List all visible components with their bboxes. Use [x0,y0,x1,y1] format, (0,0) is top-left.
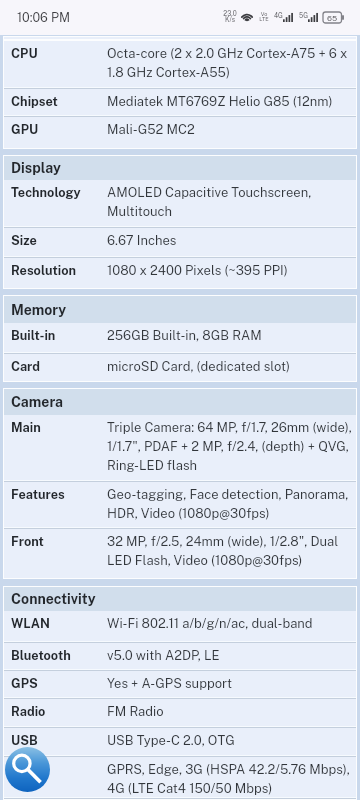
staticText: Mediatek MT6769Z Helio G85 (12nm) [107,94,356,109]
staticText: v5.0 with A2DP, LE [107,648,356,663]
button[interactable]: Memory [4,296,356,323]
staticText: 5G [299,12,308,20]
staticText: 23.0 K/s [223,10,237,24]
staticText: AMOLED Capacitive Touchscreen, Multitouc… [107,185,356,219]
button[interactable]: Resolution [4,258,356,288]
staticText: 4G [274,12,283,20]
staticText: FM Radio [107,704,356,719]
staticText: Connectivity [11,591,96,607]
staticText: USB Type-C 2.0, OTG [107,733,356,748]
staticText: Technology [11,185,107,200]
staticText: 256GB Built-in, 8GB RAM [107,328,356,343]
button[interactable]: Features [4,482,356,529]
button[interactable]: Camera [4,389,356,415]
button[interactable]: CPU [4,41,356,89]
button[interactable]: GPS [4,671,356,699]
staticText: Mali-G52 MC2 [107,122,356,137]
staticText: Geo-tagging, Face detection, Panorama, H… [107,487,356,521]
button[interactable]: Card [4,354,356,381]
staticText: Octa-core (2 x 2.0 GHz Cortex-A75 + 6 x … [107,46,356,80]
button[interactable]: Search [5,747,50,792]
staticText: GPS [11,676,107,691]
staticText: 10:06 PM [17,10,70,25]
staticText: Chipset [11,94,107,109]
button[interactable]: GPU [4,117,356,148]
staticText: Triple Camera: 64 MP, f/1.7, 26mm (wide)… [107,420,356,473]
staticText: microSD Card, (dedicated slot) [107,359,356,374]
staticText: Yes + A-GPS support [107,676,356,691]
staticText: Radio [11,704,107,719]
button[interactable]: Main [4,415,356,482]
staticText: USB [11,733,107,748]
staticText: Main [11,420,107,435]
button[interactable]: Bluetooth [4,643,356,671]
staticText: Card [11,359,107,374]
button[interactable]: Display [4,156,356,180]
staticText: Bluetooth [11,648,107,663]
button[interactable]: Technology [4,180,356,228]
staticText: GPRS, Edge, 3G (HSPA 42.2/5.76 Mbps), 4G… [107,762,356,796]
button[interactable]: Size [4,228,356,258]
button[interactable]: USB [4,728,356,757]
staticText: Built-in [11,328,107,343]
staticText: Camera [11,394,63,410]
staticText: Display [11,160,61,176]
button[interactable]: Connectivity [4,587,356,611]
staticText: Features [11,487,107,502]
staticText: GPU [11,122,107,137]
staticText: 65 [327,13,338,22]
staticText: WLAN [11,616,107,631]
button[interactable]: Radio [4,699,356,728]
button[interactable]: WLAN [4,611,356,643]
staticText: Resolution [11,263,107,278]
staticText: CPU [11,46,107,61]
button[interactable]: GPRS, Edge, 3G (HSPA 42.2/5.76 Mbps), 4G… [4,757,356,799]
staticText: Front [11,534,107,549]
staticText: 1080 x 2400 Pixels (~395 PPI) [107,263,356,278]
staticText: Wi-Fi 802.11 a/b/g/n/ac, dual-band [107,616,356,631]
staticText: Size [11,233,107,248]
staticText: Vo LTE [259,11,269,23]
staticText: 6.67 Inches [107,233,356,248]
staticText [11,762,107,777]
staticText: Memory [11,302,67,318]
button[interactable]: Chipset [4,89,356,117]
button[interactable]: Built-in [4,323,356,354]
staticText: 32 MP, f/2.5, 24mm (wide), 1/2.8", Dual … [107,534,356,568]
button[interactable]: Front [4,529,356,578]
